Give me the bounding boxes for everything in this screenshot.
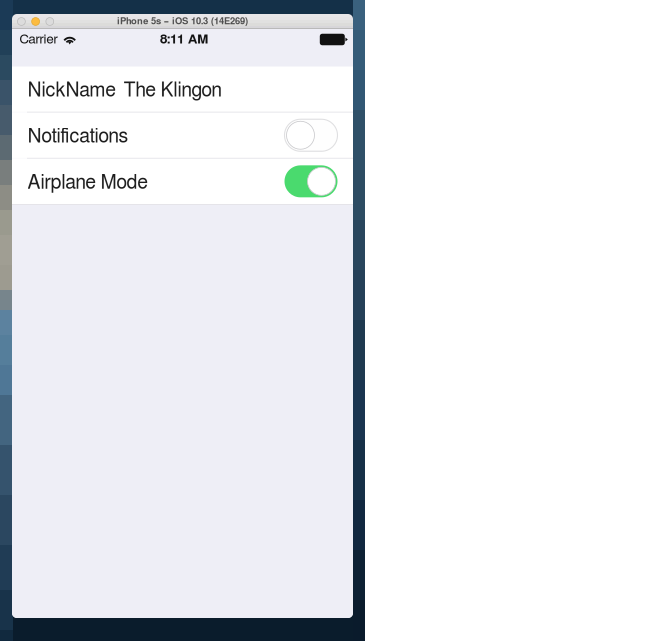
button[interactable]: Notifications: [12, 113, 353, 158]
button[interactable]: Airplane Mode: [12, 159, 353, 204]
button[interactable]: NickName: [12, 66, 353, 112]
staticText: Airplane Mode: [27, 173, 147, 192]
staticText: Carrier: [19, 33, 57, 46]
staticText: Notifications: [27, 127, 128, 146]
staticText: 8:11 AM: [160, 33, 209, 46]
staticText: NickName: [27, 81, 115, 100]
staticText: The Klingon: [123, 81, 221, 100]
staticText: iPhone 5s – iOS 10.3 (14E269): [117, 17, 248, 26]
